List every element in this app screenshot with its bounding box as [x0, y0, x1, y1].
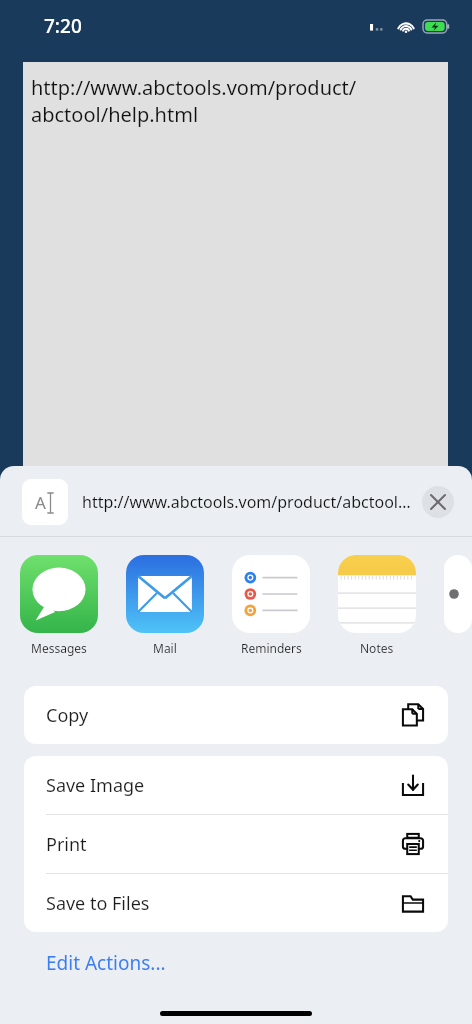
- staticText: Messages: [31, 640, 87, 656]
- staticText: http://www.abctools.vom/product/ abctool…: [31, 74, 357, 128]
- staticText: http://www.abctools.vom/product/abctool/…: [82, 491, 414, 513]
- staticText: A: [35, 491, 46, 514]
- staticText: Edit Actions...: [46, 950, 166, 976]
- staticText: Save to Files: [46, 891, 150, 916]
- button[interactable]: Save to Files: [24, 874, 448, 932]
- button[interactable]: Notes: [338, 555, 416, 656]
- staticText: Reminders: [241, 640, 302, 656]
- button[interactable]: Mail: [126, 555, 204, 656]
- button[interactable]: More apps: [444, 555, 472, 633]
- button[interactable]: Reminders: [232, 555, 310, 656]
- button[interactable]: Print: [24, 815, 448, 873]
- staticText: 7:20: [44, 13, 82, 39]
- button[interactable]: Save Image: [24, 756, 448, 814]
- button[interactable]: Copy: [24, 686, 448, 744]
- staticText: Mail: [153, 640, 177, 656]
- staticText: Copy: [46, 703, 89, 728]
- button[interactable]: Close: [422, 486, 454, 518]
- staticText: Notes: [360, 640, 394, 656]
- button[interactable]: Messages: [20, 555, 98, 656]
- button[interactable]: Edit Actions...: [0, 946, 472, 982]
- staticText: Print: [46, 832, 87, 857]
- staticText: Save Image: [46, 773, 145, 798]
